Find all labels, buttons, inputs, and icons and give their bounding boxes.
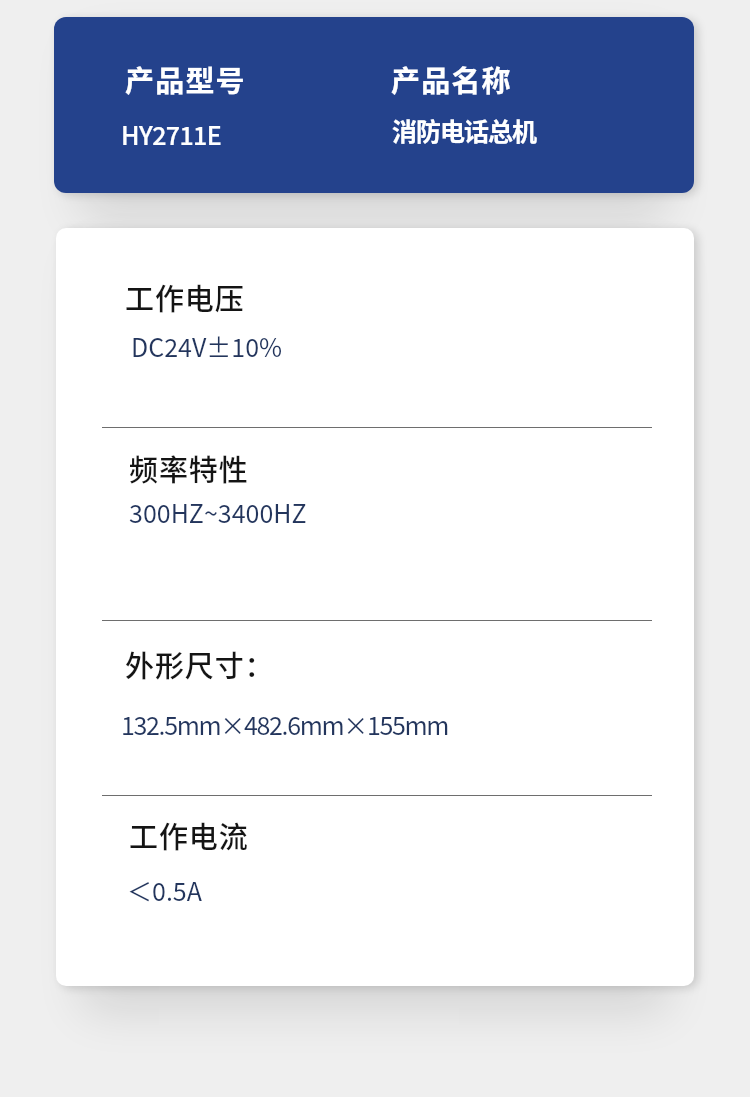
staticText: 产品型号 (125, 58, 246, 100)
button[interactable]: 工作电压 (102, 258, 652, 418)
staticText: ＜0.5A (127, 872, 202, 908)
staticText: 频率特性 (129, 447, 249, 489)
staticText: 300HZ~3400HZ (129, 494, 307, 530)
staticText: 工作电流 (129, 814, 249, 856)
button[interactable]: 工作电流 (102, 796, 652, 956)
staticText: 132.5mm×482.6mm×155mm (121, 706, 449, 742)
staticText: 工作电压 (125, 276, 245, 318)
staticText: 产品名称 (391, 58, 512, 100)
staticText: 外形尺寸： (125, 643, 275, 685)
button[interactable]: 频率特性 (102, 428, 652, 620)
staticText: HY2711E (121, 116, 222, 152)
staticText: 消防电话总机 (392, 112, 537, 148)
staticText: DC24V±10% (131, 328, 283, 364)
button[interactable]: 产品型号 HY2711E 产品名称 消防电话总机 (54, 17, 694, 193)
button[interactable]: 外形尺寸： (102, 621, 652, 795)
